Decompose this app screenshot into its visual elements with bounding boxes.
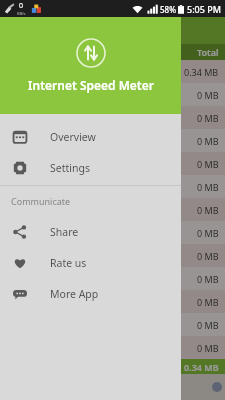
button[interactable]: 0 MB — [0, 313, 225, 336]
staticText: 0 MB — [197, 112, 219, 124]
staticText: Total — [197, 46, 219, 58]
staticText: Share — [50, 225, 79, 239]
button[interactable]: 0.34 MB — [0, 60, 225, 83]
staticText: 0 — [19, 1, 24, 11]
staticText: 0 MB — [197, 89, 219, 101]
button[interactable]: 0 MB — [0, 198, 225, 221]
staticText: 0 MB — [197, 227, 219, 239]
staticText: Communicate — [11, 195, 71, 207]
staticText: 0.34 MB — [184, 66, 219, 78]
button[interactable]: Phát Hiện Sự — [0, 374, 225, 400]
staticText: Settings — [50, 161, 90, 175]
staticText: 5:05 PM — [187, 3, 221, 15]
staticText: 0 MB — [197, 296, 219, 308]
staticText: 0 MB — [197, 158, 219, 170]
button[interactable]: Overview — [0, 121, 181, 152]
button[interactable]: 0 MB — [0, 221, 225, 244]
staticText: 0 MB — [197, 319, 219, 331]
staticText: 0 MB — [197, 204, 219, 216]
staticText: Internet Speed Meter — [28, 77, 154, 93]
button[interactable]: 0 MB — [0, 175, 225, 198]
staticText: 0 MB — [197, 250, 219, 262]
button[interactable]: 0 MB — [0, 336, 225, 359]
button[interactable]: 0 MB — [0, 290, 225, 313]
button[interactable]: Settings — [0, 152, 181, 183]
button[interactable]: 0 MB — [0, 267, 225, 290]
staticText: 0 MB — [197, 342, 219, 354]
staticText: 58% — [160, 4, 176, 15]
staticText: 0 MB — [197, 181, 219, 193]
button[interactable]: 0 MB — [0, 129, 225, 152]
button[interactable]: Close ad — [212, 382, 222, 392]
staticText: KB/s — [17, 11, 26, 16]
button[interactable]: 0 MB — [0, 83, 225, 106]
button[interactable]: 0 MB — [0, 244, 225, 267]
button[interactable]: Rate us — [0, 247, 181, 278]
staticText: 0 MB — [197, 135, 219, 147]
staticText: Rate us — [50, 256, 87, 270]
staticText: 0.34 MB — [184, 361, 219, 373]
staticText: 0 MB — [197, 273, 219, 285]
button[interactable]: More App — [0, 278, 181, 309]
staticText: More App — [50, 287, 99, 301]
button[interactable]: Share — [0, 216, 181, 247]
button[interactable]: 0 MB — [0, 152, 225, 175]
staticText: Overview — [50, 130, 96, 144]
button[interactable]: 0 MB — [0, 106, 225, 129]
